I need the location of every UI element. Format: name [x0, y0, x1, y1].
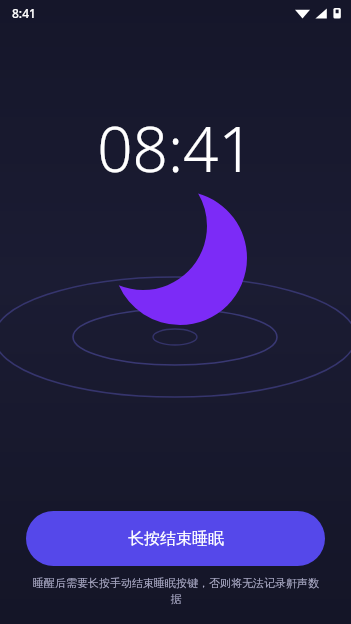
staticText: 8:41	[12, 5, 36, 21]
button[interactable]: 长按结束睡眠	[26, 511, 325, 566]
staticText: 长按结束睡眠	[128, 529, 224, 549]
staticText: 睡醒后需要长按手动结束睡眠按键，否则将无法记录鼾声数据	[31, 576, 321, 606]
staticText: 08:41	[97, 106, 254, 190]
